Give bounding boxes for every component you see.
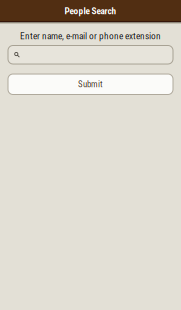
button[interactable]: Search field, enter name, e-mail or phon… [0,42,181,64]
button[interactable]: Submit [0,64,181,94]
staticText: Enter name, e-mail or phone extension [20,30,161,41]
staticText: Submit [78,79,103,89]
staticText: People Search [64,5,116,16]
